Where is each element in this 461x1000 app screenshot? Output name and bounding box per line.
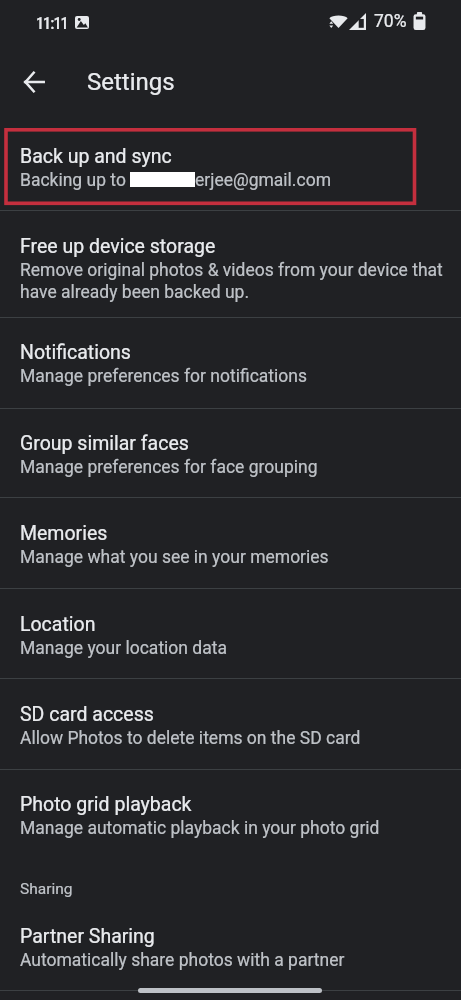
button[interactable]: Photo grid playback [0,769,461,859]
staticText: Photo grid playback [20,793,192,816]
staticText: Notifications [20,341,131,364]
staticText: 70% [374,11,407,32]
button[interactable]: Group similar faces [0,408,461,498]
staticText: Sharing [20,880,73,898]
staticText: Automatically share photos with a partne… [20,950,450,971]
button[interactable]: Partner Sharing [0,901,461,991]
staticText: Back up and sync [20,145,172,168]
staticText: 11:11 [36,14,68,33]
staticText: Location [20,613,96,636]
button[interactable]: Free up device storage [0,211,461,317]
staticText: erjee@gmail.com [195,170,331,191]
staticText: Manage automatic playback in your photo … [20,818,450,839]
staticText: Partner Sharing [20,925,155,948]
staticText: Backing up to [20,170,126,191]
staticText: Memories [20,522,108,545]
button[interactable]: Notifications [0,317,461,408]
staticText: Group similar faces [20,432,189,455]
button[interactable]: SD card access [0,679,461,770]
button[interactable]: Back up and sync [0,121,461,211]
button[interactable]: Memories [0,498,461,589]
button[interactable]: Back [14,62,54,102]
staticText: Manage preferences for notifications [20,366,450,387]
staticText: Manage what you see in your memories [20,547,450,568]
staticText: Allow Photos to delete items on the SD c… [20,728,450,749]
staticText: Manage preferences for face grouping [20,457,450,478]
staticText: Free up device storage [20,235,216,258]
staticText: Manage your location data [20,638,450,659]
staticText: Remove original photos & videos from you… [20,260,450,303]
staticText: SD card access [20,703,154,726]
staticText: Settings [87,68,175,96]
button[interactable]: Location [0,589,461,679]
